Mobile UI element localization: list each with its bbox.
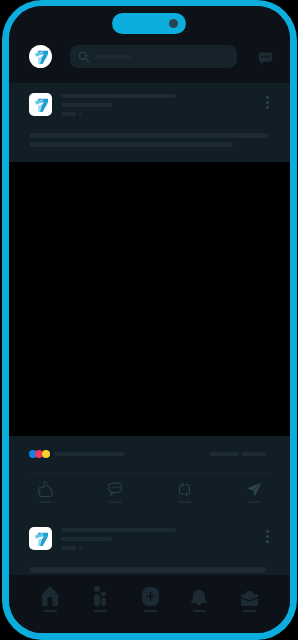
button[interactable]: Profile	[29, 45, 52, 68]
button[interactable]: Author	[29, 93, 52, 116]
button[interactable]: Repost	[169, 481, 199, 503]
button[interactable]: More options	[258, 527, 276, 545]
button[interactable]: Author	[29, 527, 52, 550]
button[interactable]: Messages	[254, 46, 276, 68]
button[interactable]: Home	[33, 586, 67, 612]
button[interactable]: My Network	[83, 586, 117, 612]
button[interactable]: Jobs	[232, 586, 266, 612]
button[interactable]: Comment	[100, 481, 130, 503]
button[interactable]: Send	[239, 481, 269, 503]
button[interactable]: Search	[70, 45, 237, 68]
button[interactable]: Notifications	[182, 586, 216, 612]
button[interactable]: Like	[30, 481, 60, 503]
button[interactable]: Post	[133, 586, 167, 612]
button[interactable]: More options	[258, 93, 276, 111]
